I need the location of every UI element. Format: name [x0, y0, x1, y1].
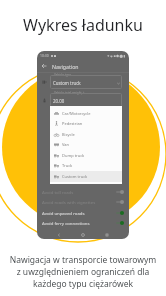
- staticText: Dump truck: [62, 153, 85, 158]
- button[interactable]: Avoid unpaved roads: [42, 208, 124, 218]
- other: Recents: [105, 233, 109, 237]
- button[interactable]: Dump truck: [50, 150, 122, 161]
- staticText: Car/Motorcycle: [62, 111, 91, 116]
- button[interactable]: Truck: [50, 160, 122, 171]
- button[interactable]: Avoid ferry connections: [42, 218, 124, 228]
- staticText: Wykres ładunku: [0, 14, 166, 36]
- staticText: Custom truck: [62, 174, 88, 179]
- staticText: Pedestrian: [62, 121, 83, 126]
- button[interactable]: Back: [41, 60, 129, 72]
- button[interactable]: Avoid toll roads: [42, 187, 124, 197]
- staticText: Avoid ferry connections: [42, 220, 90, 226]
- staticText: Navigation: [52, 63, 79, 70]
- button[interactable]: Avoid roads with vignettes: [42, 197, 124, 207]
- staticText: Vehicle type: [54, 73, 71, 77]
- button[interactable]: Car/Motorcycle: [50, 108, 122, 119]
- button[interactable]: Van: [50, 139, 122, 150]
- staticText: ✦ ⬙ ▪ ⬟ ⬤ ▮: [107, 54, 126, 58]
- staticText: Nawigacja w transporcie towarowym z uwzg…: [0, 254, 166, 290]
- staticText: Avoid roads with vignettes: [42, 199, 96, 205]
- other: Back: [41, 63, 47, 69]
- other: Back: [57, 233, 61, 237]
- button[interactable]: Vehicle total weight, t: [50, 93, 122, 107]
- button[interactable]: Custom truck: [50, 171, 122, 182]
- button[interactable]: Vehicle type: [50, 75, 122, 89]
- staticText: 10:30: [40, 53, 49, 58]
- button[interactable]: Bicycle: [50, 129, 122, 140]
- staticText: Truck: [62, 163, 73, 168]
- staticText: Custom truck: [53, 80, 81, 86]
- staticText: Bicycle: [62, 132, 75, 137]
- staticText: Vehicle total weight, t: [54, 91, 85, 95]
- staticText: 20.00: [53, 98, 65, 104]
- staticText: Avoid toll roads: [42, 189, 74, 195]
- button[interactable]: Pedestrian: [50, 118, 122, 129]
- other: Home: [81, 233, 85, 237]
- staticText: Van: [62, 142, 70, 147]
- staticText: Avoid unpaved roads: [42, 210, 85, 216]
